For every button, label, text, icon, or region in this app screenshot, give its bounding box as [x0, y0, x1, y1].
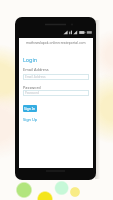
button[interactable]: Email Address: [23, 74, 89, 80]
button[interactable]: mathewslapok.onlinecreateportal.com: [19, 39, 93, 45]
button[interactable]: Sign In: [23, 105, 37, 112]
button[interactable]: Password: [23, 90, 89, 96]
staticText: Sign In: [24, 106, 36, 111]
staticText: Email Address: [25, 75, 46, 79]
staticText: Password: [25, 91, 39, 95]
staticText: mathewslapok.onlinecreateportal.com: [26, 40, 86, 44]
staticText: Login: [23, 56, 38, 63]
staticText: Password: [23, 85, 41, 90]
button[interactable]: Sign Up: [23, 117, 38, 122]
staticText: Email Address: [23, 67, 49, 72]
